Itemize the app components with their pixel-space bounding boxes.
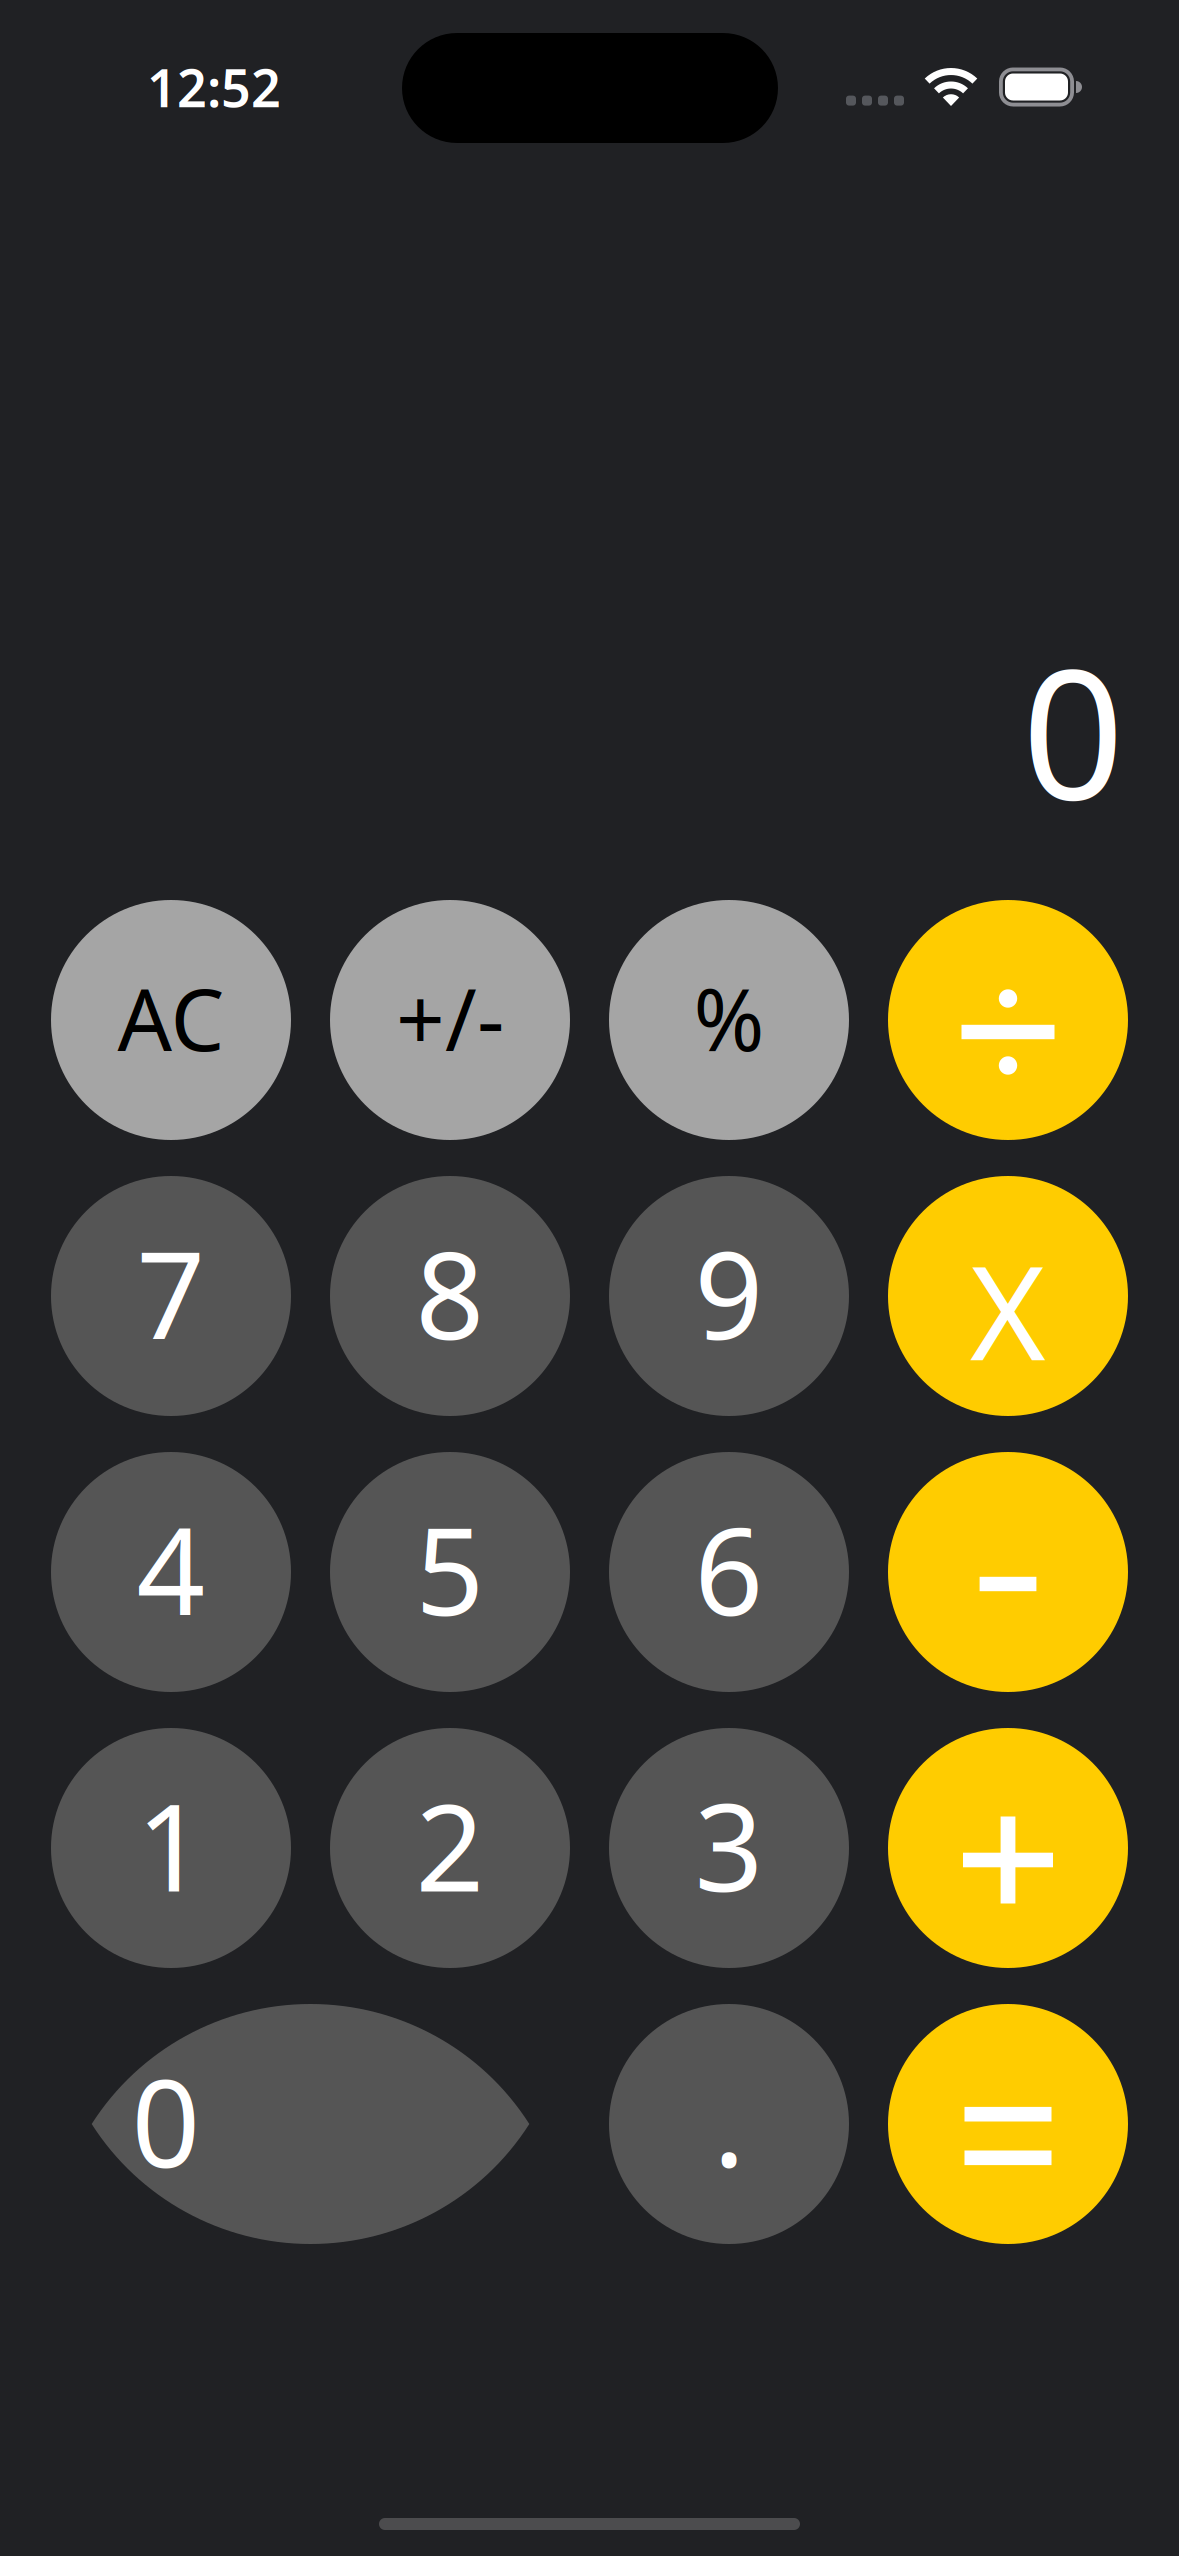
staticText: 9 xyxy=(694,1213,763,1373)
button[interactable]: 0 xyxy=(51,2004,570,2244)
staticText: 8 xyxy=(415,1213,484,1373)
button[interactable]: 1 xyxy=(51,1728,291,1968)
button[interactable]: 7 xyxy=(51,1176,291,1416)
button[interactable]: Minus xyxy=(888,1452,1128,1692)
button[interactable]: . xyxy=(609,2004,849,2244)
button[interactable]: +/- xyxy=(330,900,570,1140)
staticText: % xyxy=(693,961,764,1075)
button[interactable]: X xyxy=(888,1176,1128,1416)
staticText: 5 xyxy=(415,1489,484,1649)
button[interactable]: Plus xyxy=(888,1728,1128,1968)
button[interactable]: 9 xyxy=(609,1176,849,1416)
staticText: . xyxy=(713,2040,745,2200)
staticText: 1 xyxy=(136,1765,205,1925)
staticText: X xyxy=(970,1224,1046,1396)
staticText: 7 xyxy=(136,1213,205,1373)
button[interactable]: Equals xyxy=(888,2004,1128,2244)
button[interactable]: 6 xyxy=(609,1452,849,1692)
staticText: 0 xyxy=(131,2041,200,2201)
staticText: 12:52 xyxy=(147,52,281,122)
button[interactable]: % xyxy=(609,900,849,1140)
staticText: 2 xyxy=(415,1765,484,1925)
staticText: AC xyxy=(117,961,224,1075)
button[interactable]: 4 xyxy=(51,1452,291,1692)
staticText: 6 xyxy=(694,1489,763,1649)
button[interactable]: 8 xyxy=(330,1176,570,1416)
button[interactable]: 3 xyxy=(609,1728,849,1968)
button[interactable]: 2 xyxy=(330,1728,570,1968)
button[interactable]: Divide xyxy=(888,900,1128,1140)
staticText: 3 xyxy=(694,1765,763,1925)
staticText: 4 xyxy=(136,1489,205,1649)
staticText: +/- xyxy=(396,961,504,1075)
button[interactable]: AC xyxy=(51,900,291,1140)
button[interactable]: 5 xyxy=(330,1452,570,1692)
staticText: 0 xyxy=(1022,611,1124,849)
